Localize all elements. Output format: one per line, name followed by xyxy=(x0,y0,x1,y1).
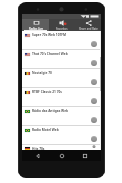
button[interactable]: Back xyxy=(30,150,46,161)
button[interactable]: Radios Live xyxy=(22,19,49,31)
button[interactable]: That 70's Channel Web xyxy=(22,50,101,68)
staticText: Super 70s Web 107FM xyxy=(32,33,67,37)
staticText: That 70's Channel Web xyxy=(32,52,68,56)
button[interactable]: Rádio das Antigas Web xyxy=(22,107,101,125)
staticText: RTBF Classic 21 70s xyxy=(32,90,62,94)
staticText: Hits 70s xyxy=(32,147,45,150)
staticText: Radio Motel Web xyxy=(32,128,59,132)
button[interactable]: Play Radio Motel Web xyxy=(91,136,97,142)
staticText: Share and Rate xyxy=(79,27,98,31)
button[interactable]: Hits 70s xyxy=(22,145,101,150)
button[interactable]: Nostalgie 70 xyxy=(22,69,101,87)
button[interactable]: Play Rádio das Antigas Web xyxy=(91,117,97,123)
staticText: Favoritos xyxy=(56,27,68,31)
button[interactable]: Play That 70's Channel Web xyxy=(91,60,97,66)
button[interactable]: RTBF Classic 21 70s xyxy=(22,88,101,106)
button[interactable]: Super 70s Web 107FM xyxy=(22,31,101,49)
button[interactable]: Home xyxy=(54,150,70,161)
staticText: Radios Live xyxy=(29,27,43,31)
button[interactable]: Share and Rate xyxy=(75,19,101,31)
button[interactable]: Play Nostalgie 70 xyxy=(91,79,97,85)
button[interactable]: Favoritos xyxy=(49,19,75,31)
staticText: Rádio das Antigas Web xyxy=(32,109,69,113)
button[interactable]: Play RTBF Classic 21 70s xyxy=(91,98,97,104)
button[interactable]: Radio Motel Web xyxy=(22,126,101,144)
button[interactable]: Recent apps xyxy=(77,150,93,161)
button[interactable]: Play Super 70s Web 107FM xyxy=(91,41,97,47)
button[interactable]: Play Hits 70s xyxy=(91,145,97,148)
staticText: Nostalgie 70 xyxy=(32,71,52,75)
